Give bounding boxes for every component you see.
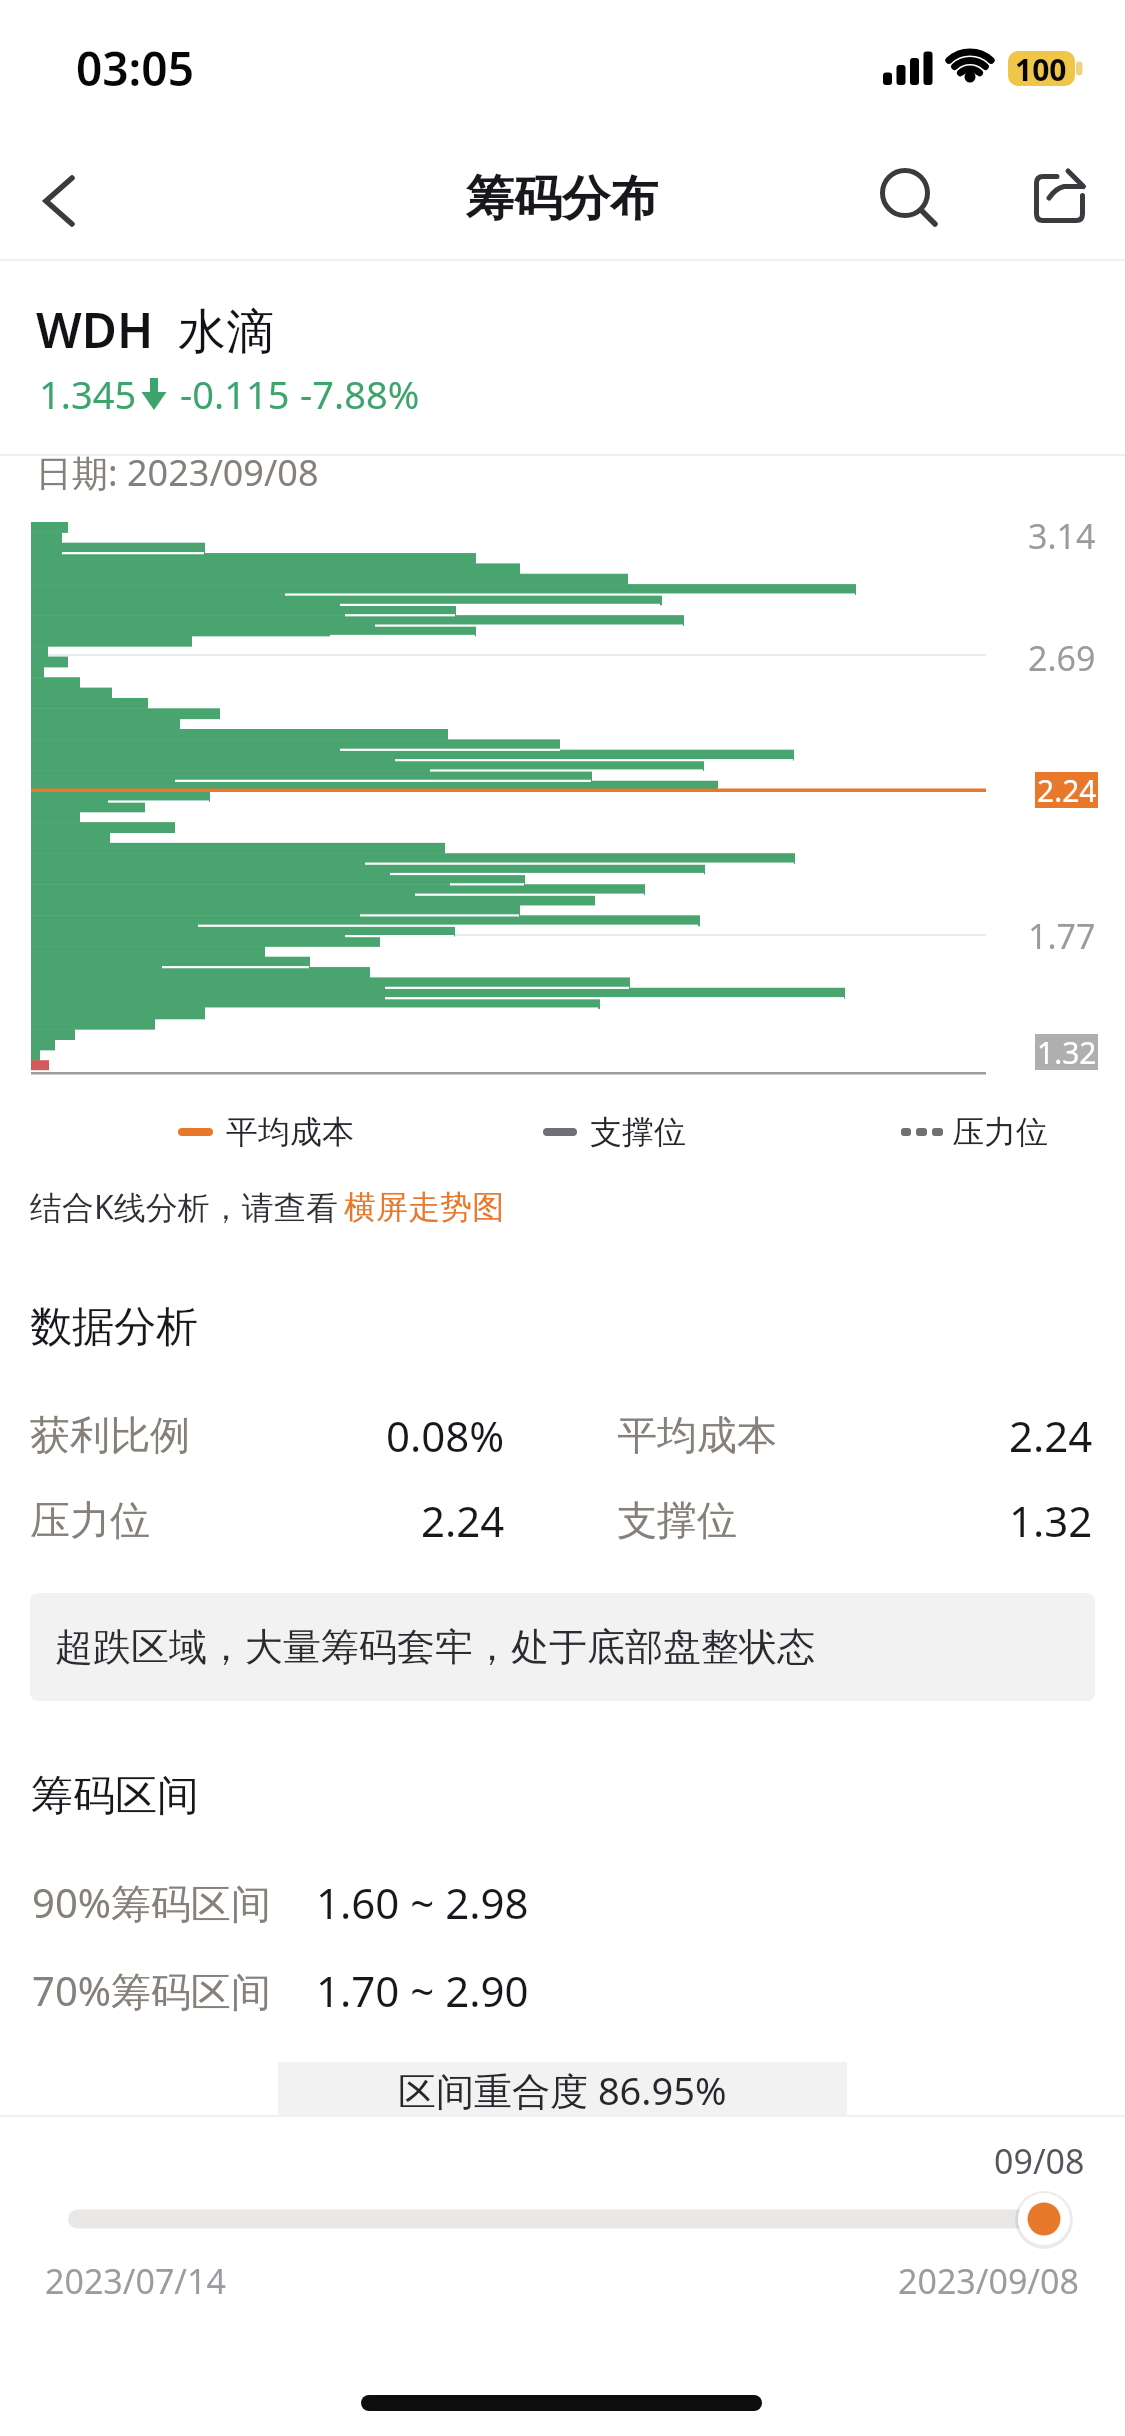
staticText: 支撑位: [617, 1495, 737, 1545]
staticText: 09/08: [994, 2138, 1085, 2184]
staticText: 70%筹码区间: [32, 1963, 271, 2018]
staticText: 2.69: [1028, 635, 1096, 681]
button[interactable]: [20, 160, 100, 240]
staticText: 平均成本: [226, 1112, 354, 1152]
staticText: 1.77: [1028, 913, 1096, 959]
staticText: 90%筹码区间: [32, 1875, 271, 1930]
staticText: 2023/07/14: [45, 2258, 226, 2304]
staticText: 1.32: [1009, 1492, 1093, 1549]
staticText: 超跌区域，大量筹码套牢，处于底部盘整状态: [55, 1623, 815, 1671]
staticText: 获利比例: [30, 1410, 190, 1460]
button[interactable]: [870, 160, 950, 240]
staticText: 结合K线分析，请查看: [30, 1185, 338, 1229]
staticText: 横屏走势图: [344, 1187, 504, 1227]
staticText: 1.32: [1037, 1032, 1097, 1073]
staticText: 压力位: [30, 1495, 150, 1545]
staticText: 03:05: [76, 37, 194, 100]
staticText: 2023/09/08: [898, 2258, 1079, 2304]
staticText: 数据分析: [30, 1301, 198, 1354]
staticText: 支撑位: [590, 1112, 686, 1152]
staticText: 2.24: [1037, 770, 1097, 811]
staticText: 0.08%: [386, 1407, 505, 1464]
button[interactable]: [1010, 2185, 1078, 2253]
staticText: 3.14: [1028, 513, 1096, 559]
staticText: 日期: 2023/09/08: [36, 448, 319, 497]
staticText: 1.60 ~ 2.98: [316, 1874, 529, 1931]
staticText: 100: [1015, 49, 1067, 90]
staticText: 区间重合度 86.95%: [398, 2064, 727, 2116]
staticText: 压力位: [952, 1112, 1048, 1152]
staticText: 平均成本: [617, 1410, 777, 1460]
staticText: -0.115: [180, 368, 290, 420]
staticText: 1.345: [39, 368, 137, 420]
staticText: 1.70 ~ 2.90: [316, 1962, 529, 2019]
staticText: -7.88%: [300, 368, 420, 420]
button[interactable]: 横屏走势图: [344, 1177, 504, 1237]
staticText: 筹码区间: [31, 1770, 199, 1823]
staticText: WDH 水滴: [36, 297, 275, 363]
button[interactable]: [1020, 160, 1100, 240]
staticText: 2.24: [421, 1492, 505, 1549]
staticText: 2.24: [1009, 1407, 1093, 1464]
staticText: 筹码分布: [466, 169, 658, 229]
